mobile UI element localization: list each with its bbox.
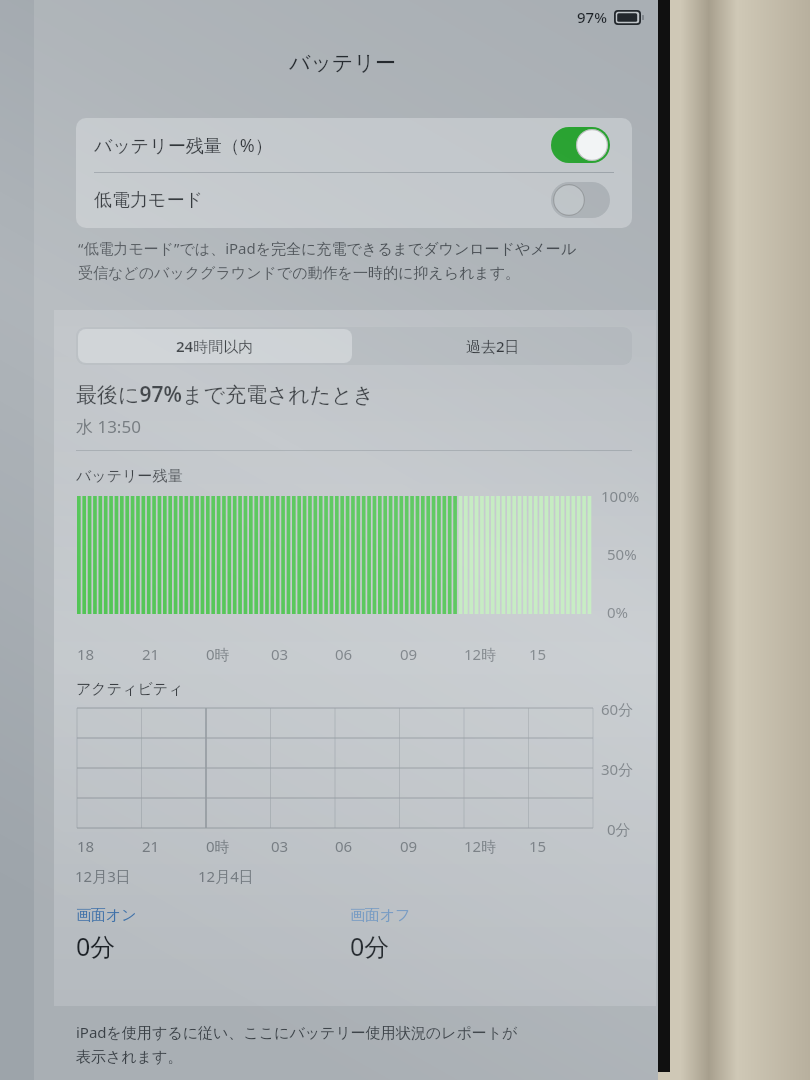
staticText: 12月4日	[198, 866, 254, 886]
staticText: バッテリー残量（%）	[94, 133, 273, 158]
staticText: 09	[400, 836, 418, 856]
staticText: 21	[142, 836, 160, 856]
button[interactable]: Off	[551, 182, 610, 218]
staticText: 15	[529, 644, 547, 664]
button[interactable]: 画面オフ	[350, 906, 411, 963]
staticText: 画面オフ	[350, 906, 411, 925]
staticText: 18	[77, 836, 95, 856]
staticText: 09	[400, 644, 418, 664]
staticText: 15	[529, 836, 547, 856]
staticText: 100%	[601, 486, 640, 506]
staticText: 0分	[350, 929, 390, 963]
staticText: 0時	[206, 836, 230, 856]
staticText: 03	[271, 644, 289, 664]
staticText: 06	[335, 836, 353, 856]
staticText: 画面オン	[76, 906, 137, 925]
button[interactable]: 過去2日	[354, 327, 632, 365]
staticText: 50%	[607, 544, 637, 564]
staticText: 06	[335, 644, 353, 664]
staticText: 60分	[601, 699, 634, 719]
staticText: 最後に97%まで充電されたとき	[76, 380, 375, 409]
staticText: 30分	[601, 759, 634, 779]
staticText: 97%	[577, 7, 607, 27]
staticText: 受信などのバックグラウンドでの動作を一時的に抑えられます。	[78, 264, 521, 283]
staticText: バッテリー	[289, 50, 396, 76]
staticText: 12月3日	[75, 866, 131, 886]
staticText: 12時	[464, 836, 497, 856]
staticText: アクティビティ	[76, 680, 184, 699]
button[interactable]: バッテリー残量（%）	[76, 118, 632, 172]
staticText: 0%	[607, 602, 629, 622]
other: Battery 97 percent	[614, 10, 644, 25]
staticText: 12時	[464, 644, 497, 664]
staticText: 21	[142, 644, 160, 664]
staticText: 24時間以内	[176, 336, 254, 356]
staticText: 0分	[607, 819, 631, 839]
staticText: 0分	[76, 929, 116, 963]
staticText: 表示されます。	[76, 1048, 183, 1067]
staticText: 過去2日	[466, 336, 520, 356]
staticText: 水 13:50	[76, 415, 141, 438]
staticText: 03	[271, 836, 289, 856]
staticText: 0時	[206, 644, 230, 664]
staticText: “低電力モード”では、iPadを完全に充電できるまでダウンロードやメール	[78, 238, 577, 258]
staticText: iPadを使用するに従い、ここにバッテリー使用状況のレポートが	[76, 1022, 518, 1042]
staticText: 18	[77, 644, 95, 664]
button[interactable]: 画面オン	[76, 906, 137, 963]
staticText: バッテリー残量	[76, 467, 183, 486]
button[interactable]: 24時間以内	[78, 329, 352, 363]
button[interactable]: 低電力モード	[76, 173, 632, 227]
staticText: 低電力モード	[94, 189, 203, 212]
button[interactable]: On	[551, 127, 610, 163]
